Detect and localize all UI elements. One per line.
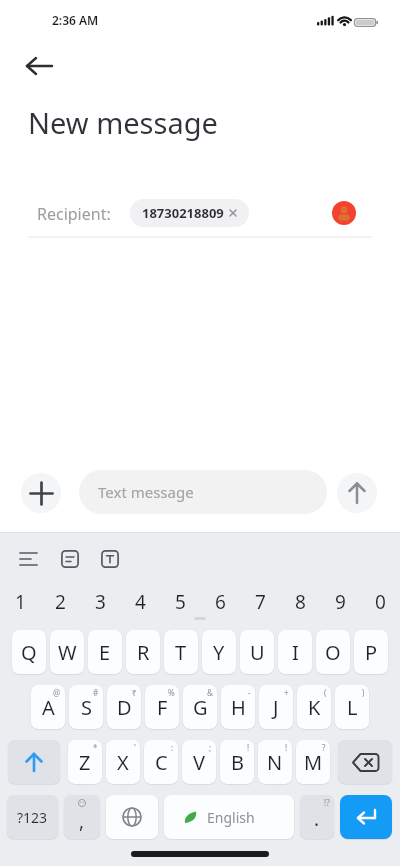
button[interactable]: H <box>221 685 255 729</box>
button[interactable]: A <box>31 685 65 729</box>
staticText: X <box>117 749 129 776</box>
staticText: New message <box>28 103 218 142</box>
button[interactable]: 9 <box>320 589 360 615</box>
staticText: % <box>168 687 175 698</box>
staticText: & <box>207 687 213 698</box>
staticText: R <box>137 639 150 666</box>
button[interactable] <box>8 740 60 784</box>
staticText: W <box>58 639 77 666</box>
button[interactable]: V <box>182 740 216 784</box>
button[interactable] <box>332 201 356 225</box>
staticText: ₹ <box>132 687 137 698</box>
staticText: F <box>157 694 168 721</box>
button[interactable]: 4 <box>120 589 160 615</box>
button[interactable]: 6 <box>200 589 240 615</box>
button[interactable]: ?123 <box>7 795 58 839</box>
staticText: @ <box>53 687 61 698</box>
button[interactable]: F <box>145 685 179 729</box>
button[interactable]: J <box>259 685 293 729</box>
staticText: S <box>81 694 92 721</box>
staticText: K <box>308 694 321 721</box>
button[interactable] <box>340 795 392 839</box>
staticText: ! <box>247 742 250 753</box>
button[interactable]: U <box>240 630 274 674</box>
staticText: H <box>231 694 246 721</box>
button[interactable] <box>106 795 158 839</box>
button[interactable]: M <box>296 740 330 784</box>
button[interactable] <box>56 546 84 572</box>
staticText: 4 <box>135 589 146 615</box>
staticText: * <box>93 742 98 753</box>
staticText: , <box>79 808 85 834</box>
button[interactable]: 0 <box>360 589 400 615</box>
staticText: ' <box>134 742 136 753</box>
staticText: Text message <box>98 482 194 502</box>
staticText: 9 <box>335 589 346 615</box>
button[interactable]: Text message <box>79 470 327 514</box>
staticText: Q <box>21 639 37 666</box>
button[interactable]: O <box>316 630 350 674</box>
button[interactable]: X <box>106 740 140 784</box>
button[interactable]: 1 <box>0 589 40 615</box>
staticText: - <box>248 687 251 698</box>
button[interactable] <box>21 473 61 513</box>
button[interactable]: 2 <box>40 589 80 615</box>
button[interactable]: R <box>126 630 160 674</box>
staticText: V <box>193 749 205 776</box>
staticText: 2:36 AM <box>52 12 99 28</box>
button[interactable]: B <box>220 740 254 784</box>
button[interactable] <box>12 546 46 572</box>
button[interactable]: G <box>183 685 217 729</box>
button[interactable] <box>96 546 124 572</box>
button[interactable]: K <box>297 685 331 729</box>
staticText: E <box>99 639 111 666</box>
button[interactable]: 5 <box>160 589 200 615</box>
button[interactable]: W <box>50 630 84 674</box>
button[interactable]: 18730218809 <box>130 199 249 227</box>
button[interactable]: 7 <box>240 589 280 615</box>
staticText: 0 <box>375 589 386 615</box>
button[interactable]: L <box>335 685 369 729</box>
staticText: Recipient: <box>37 203 111 225</box>
button[interactable] <box>18 50 62 82</box>
button[interactable]: P <box>354 630 388 674</box>
button[interactable]: C <box>144 740 178 784</box>
staticText: Y <box>213 639 225 666</box>
staticText: Z <box>79 749 91 776</box>
button[interactable]: English <box>164 795 294 839</box>
button[interactable]: T <box>164 630 198 674</box>
staticText: ( <box>324 687 327 698</box>
staticText: 18730218809 <box>142 204 224 222</box>
button[interactable]: D <box>107 685 141 729</box>
button[interactable]: Y <box>202 630 236 674</box>
staticText: ) <box>362 687 365 698</box>
button[interactable]: S <box>69 685 103 729</box>
button[interactable] <box>337 473 377 513</box>
staticText: D <box>117 694 132 721</box>
button[interactable]: E <box>88 630 122 674</box>
staticText: # <box>93 687 99 698</box>
staticText: ?123 <box>17 808 48 827</box>
button[interactable]: . <box>300 795 334 839</box>
staticText: + <box>284 687 289 698</box>
staticText: 6 <box>215 589 226 615</box>
staticText: C <box>155 749 168 776</box>
staticText: 1 <box>15 589 26 615</box>
button[interactable]: , <box>64 795 100 839</box>
button[interactable]: N <box>258 740 292 784</box>
staticText: L <box>347 694 358 721</box>
staticText: . <box>314 806 320 832</box>
button[interactable]: Q <box>12 630 46 674</box>
button[interactable] <box>338 740 392 784</box>
button[interactable]: Z <box>68 740 102 784</box>
staticText: O <box>325 639 341 666</box>
staticText: ; <box>209 742 212 753</box>
staticText: ! <box>285 742 288 753</box>
button[interactable]: 8 <box>280 589 320 615</box>
staticText: 8 <box>295 589 306 615</box>
staticText: G <box>193 694 208 721</box>
button[interactable]: 3 <box>80 589 120 615</box>
staticText: A <box>42 694 55 721</box>
staticText: : <box>171 742 174 753</box>
button[interactable]: I <box>278 630 312 674</box>
